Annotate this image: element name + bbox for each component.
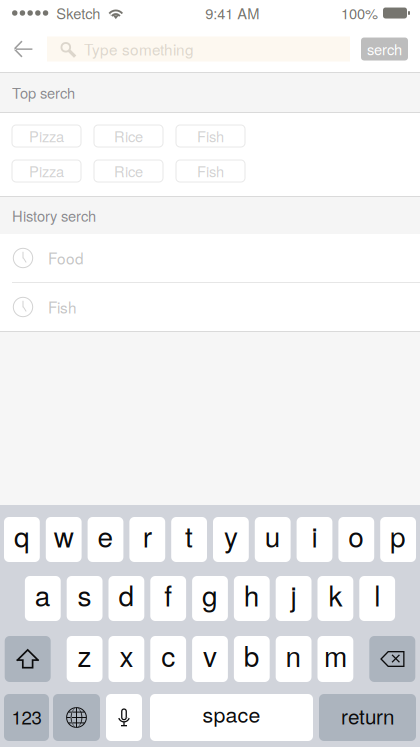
button[interactable]: r: [129, 517, 165, 562]
staticText: Fish: [197, 125, 224, 146]
button[interactable]: Rice: [94, 125, 163, 147]
button[interactable]: y: [213, 517, 249, 562]
button[interactable]: q: [4, 517, 40, 562]
button[interactable]: n: [276, 636, 311, 682]
button[interactable]: x: [108, 636, 144, 682]
button[interactable]: space: [150, 694, 313, 741]
staticText: j: [291, 574, 297, 615]
button[interactable]: Shift: [5, 636, 51, 682]
button[interactable]: v: [192, 636, 228, 682]
button[interactable]: l: [359, 576, 395, 621]
staticText: 100%: [341, 2, 378, 23]
staticText: i: [311, 515, 317, 556]
staticText: g: [202, 574, 218, 615]
button[interactable]: Food: [0, 234, 420, 282]
staticText: Fish: [197, 160, 224, 181]
staticText: c: [161, 635, 175, 675]
button[interactable]: i: [297, 517, 332, 562]
staticText: f: [164, 574, 172, 615]
staticText: Pizza: [29, 125, 64, 146]
button[interactable]: k: [317, 576, 353, 621]
button[interactable]: b: [234, 636, 270, 682]
button[interactable]: Delete: [369, 636, 415, 682]
button[interactable]: z: [67, 636, 102, 682]
button[interactable]: o: [338, 517, 374, 562]
staticText: space: [202, 698, 260, 729]
button[interactable]: w: [46, 517, 82, 562]
staticText: n: [286, 635, 302, 675]
staticText: serch: [367, 38, 402, 59]
button[interactable]: Rice: [94, 160, 163, 182]
staticText: Rice: [114, 125, 143, 146]
staticText: History serch: [12, 205, 96, 226]
button[interactable]: p: [380, 517, 416, 562]
staticText: v: [203, 635, 217, 675]
button[interactable]: d: [108, 576, 144, 621]
staticText: m: [324, 635, 347, 675]
staticText: p: [390, 515, 406, 556]
staticText: Rice: [114, 160, 143, 181]
button[interactable]: t: [171, 517, 207, 562]
button[interactable]: serch: [361, 37, 408, 60]
staticText: return: [341, 701, 394, 730]
button[interactable]: Fish: [0, 283, 420, 331]
staticText: Top serch: [12, 82, 75, 103]
staticText: b: [244, 635, 260, 675]
button[interactable]: s: [67, 576, 102, 621]
button[interactable]: Back: [0, 27, 47, 71]
button[interactable]: Fish: [176, 160, 245, 182]
staticText: s: [78, 574, 92, 615]
button[interactable]: Pizza: [12, 160, 81, 182]
staticText: z: [78, 635, 92, 675]
button[interactable]: g: [192, 576, 228, 621]
staticText: h: [244, 574, 260, 615]
staticText: o: [348, 515, 364, 556]
button[interactable]: u: [255, 517, 291, 562]
staticText: u: [265, 515, 281, 556]
button[interactable]: a: [25, 576, 61, 621]
staticText: l: [374, 574, 380, 615]
staticText: Food: [48, 247, 84, 269]
button[interactable]: Dictation: [106, 694, 142, 741]
staticText: Pizza: [29, 160, 64, 181]
staticText: k: [328, 574, 342, 615]
staticText: x: [119, 635, 133, 675]
button[interactable]: Pizza: [12, 125, 81, 147]
staticText: 9:41 AM: [205, 2, 259, 23]
staticText: t: [185, 515, 193, 556]
button[interactable]: h: [234, 576, 270, 621]
button[interactable]: e: [88, 517, 123, 562]
button[interactable]: m: [317, 636, 353, 682]
staticText: 123: [11, 703, 41, 730]
button[interactable]: Next keyboard: [53, 694, 100, 741]
staticText: Fish: [48, 296, 77, 318]
staticText: Type something: [84, 38, 194, 60]
staticText: y: [224, 515, 238, 556]
button[interactable]: Fish: [176, 125, 245, 147]
button[interactable]: 123: [4, 694, 49, 741]
staticText: r: [143, 515, 152, 556]
staticText: d: [118, 574, 134, 615]
button[interactable]: j: [276, 576, 311, 621]
button[interactable]: return: [319, 694, 416, 741]
button[interactable]: f: [150, 576, 186, 621]
staticText: w: [54, 515, 74, 556]
button[interactable]: c: [150, 636, 186, 682]
staticText: a: [35, 574, 51, 615]
staticText: q: [14, 515, 30, 556]
staticText: e: [97, 515, 113, 556]
staticText: Sketch: [56, 2, 100, 23]
